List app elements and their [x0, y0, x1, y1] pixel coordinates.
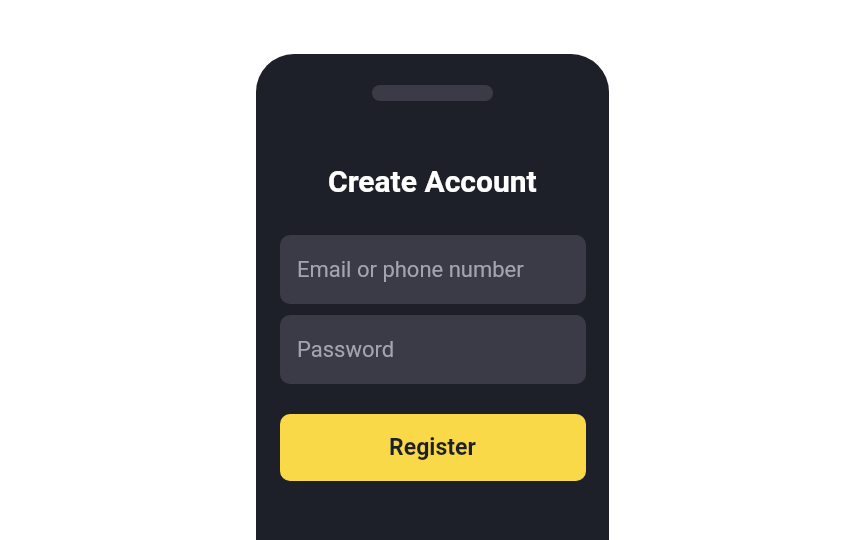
staticText: Password	[297, 337, 395, 363]
staticText: Create Account	[328, 164, 537, 199]
staticText: Register	[389, 434, 476, 461]
button[interactable]: Email or phone number	[280, 235, 586, 304]
staticText: Email or phone number	[297, 257, 524, 283]
button[interactable]: Password	[280, 315, 586, 384]
button[interactable]: Register	[280, 414, 586, 481]
button[interactable]: Drag handle	[372, 85, 493, 101]
